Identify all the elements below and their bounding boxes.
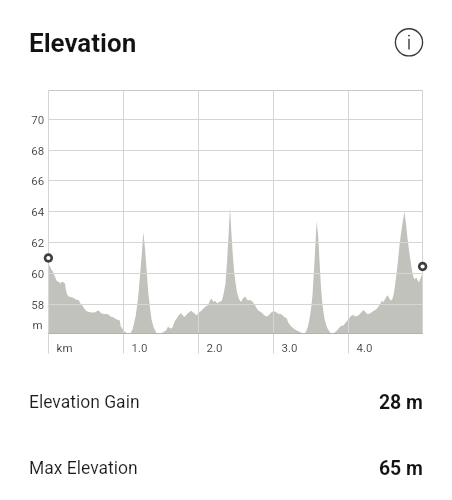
button[interactable]: Elevation — [29, 28, 137, 58]
staticText: 28 m — [330, 391, 423, 415]
staticText: Max Elevation — [29, 458, 138, 479]
button[interactable]: Elevation Gain — [0, 383, 452, 421]
staticText: Elevation Gain — [29, 392, 140, 413]
button[interactable]: Max Elevation — [0, 449, 452, 487]
staticText: 65 m — [330, 457, 423, 481]
button[interactable]: Info — [394, 27, 424, 57]
